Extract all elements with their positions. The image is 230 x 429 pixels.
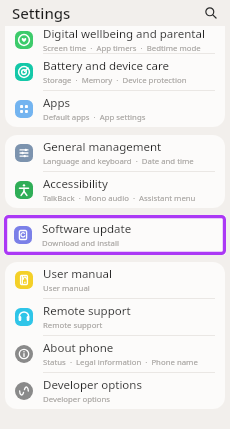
staticText: Remote support — [43, 320, 103, 331]
button[interactable]: Remote support — [5, 299, 225, 336]
staticText: User manual — [43, 283, 90, 294]
staticText: Default apps · App settings — [43, 112, 146, 123]
staticText: Download and install — [42, 238, 119, 249]
button[interactable]: General management — [5, 135, 225, 172]
staticText: Storage · Memory · Device protection — [43, 75, 187, 86]
button[interactable]: About phone — [5, 336, 225, 373]
staticText: About phone — [43, 340, 114, 356]
button[interactable]: Software update — [4, 215, 226, 255]
staticText: User manual — [43, 266, 112, 282]
staticText: Developer options — [43, 377, 142, 393]
staticText: Settings — [12, 3, 71, 23]
staticText: Battery and device care — [43, 58, 170, 74]
staticText: Language and keyboard · Date and time — [43, 156, 194, 167]
staticText: TalkBack · Mono audio · Assistant menu — [43, 193, 196, 204]
button[interactable]: Digital wellbeing and parental controls — [15, 26, 215, 53]
button[interactable]: Developer options — [5, 373, 225, 409]
staticText: Remote support — [43, 303, 131, 319]
staticText: Developer options — [43, 394, 111, 405]
button[interactable]: Apps — [5, 91, 225, 127]
staticText: Screen time · App timers · Bedtime mode — [43, 43, 201, 53]
staticText: Software update — [42, 221, 132, 237]
staticText: General management — [43, 139, 162, 155]
staticText: Apps — [43, 95, 71, 111]
button[interactable]: Accessibility — [5, 172, 225, 208]
staticText: Accessibility — [43, 176, 108, 192]
button[interactable]: User manual — [5, 262, 225, 299]
staticText: Digital wellbeing and parental controls — [43, 26, 215, 42]
button[interactable]: Search — [200, 2, 222, 24]
staticText: Status · Legal information · Phone name — [43, 357, 198, 368]
button[interactable]: Battery and device care — [5, 54, 225, 91]
